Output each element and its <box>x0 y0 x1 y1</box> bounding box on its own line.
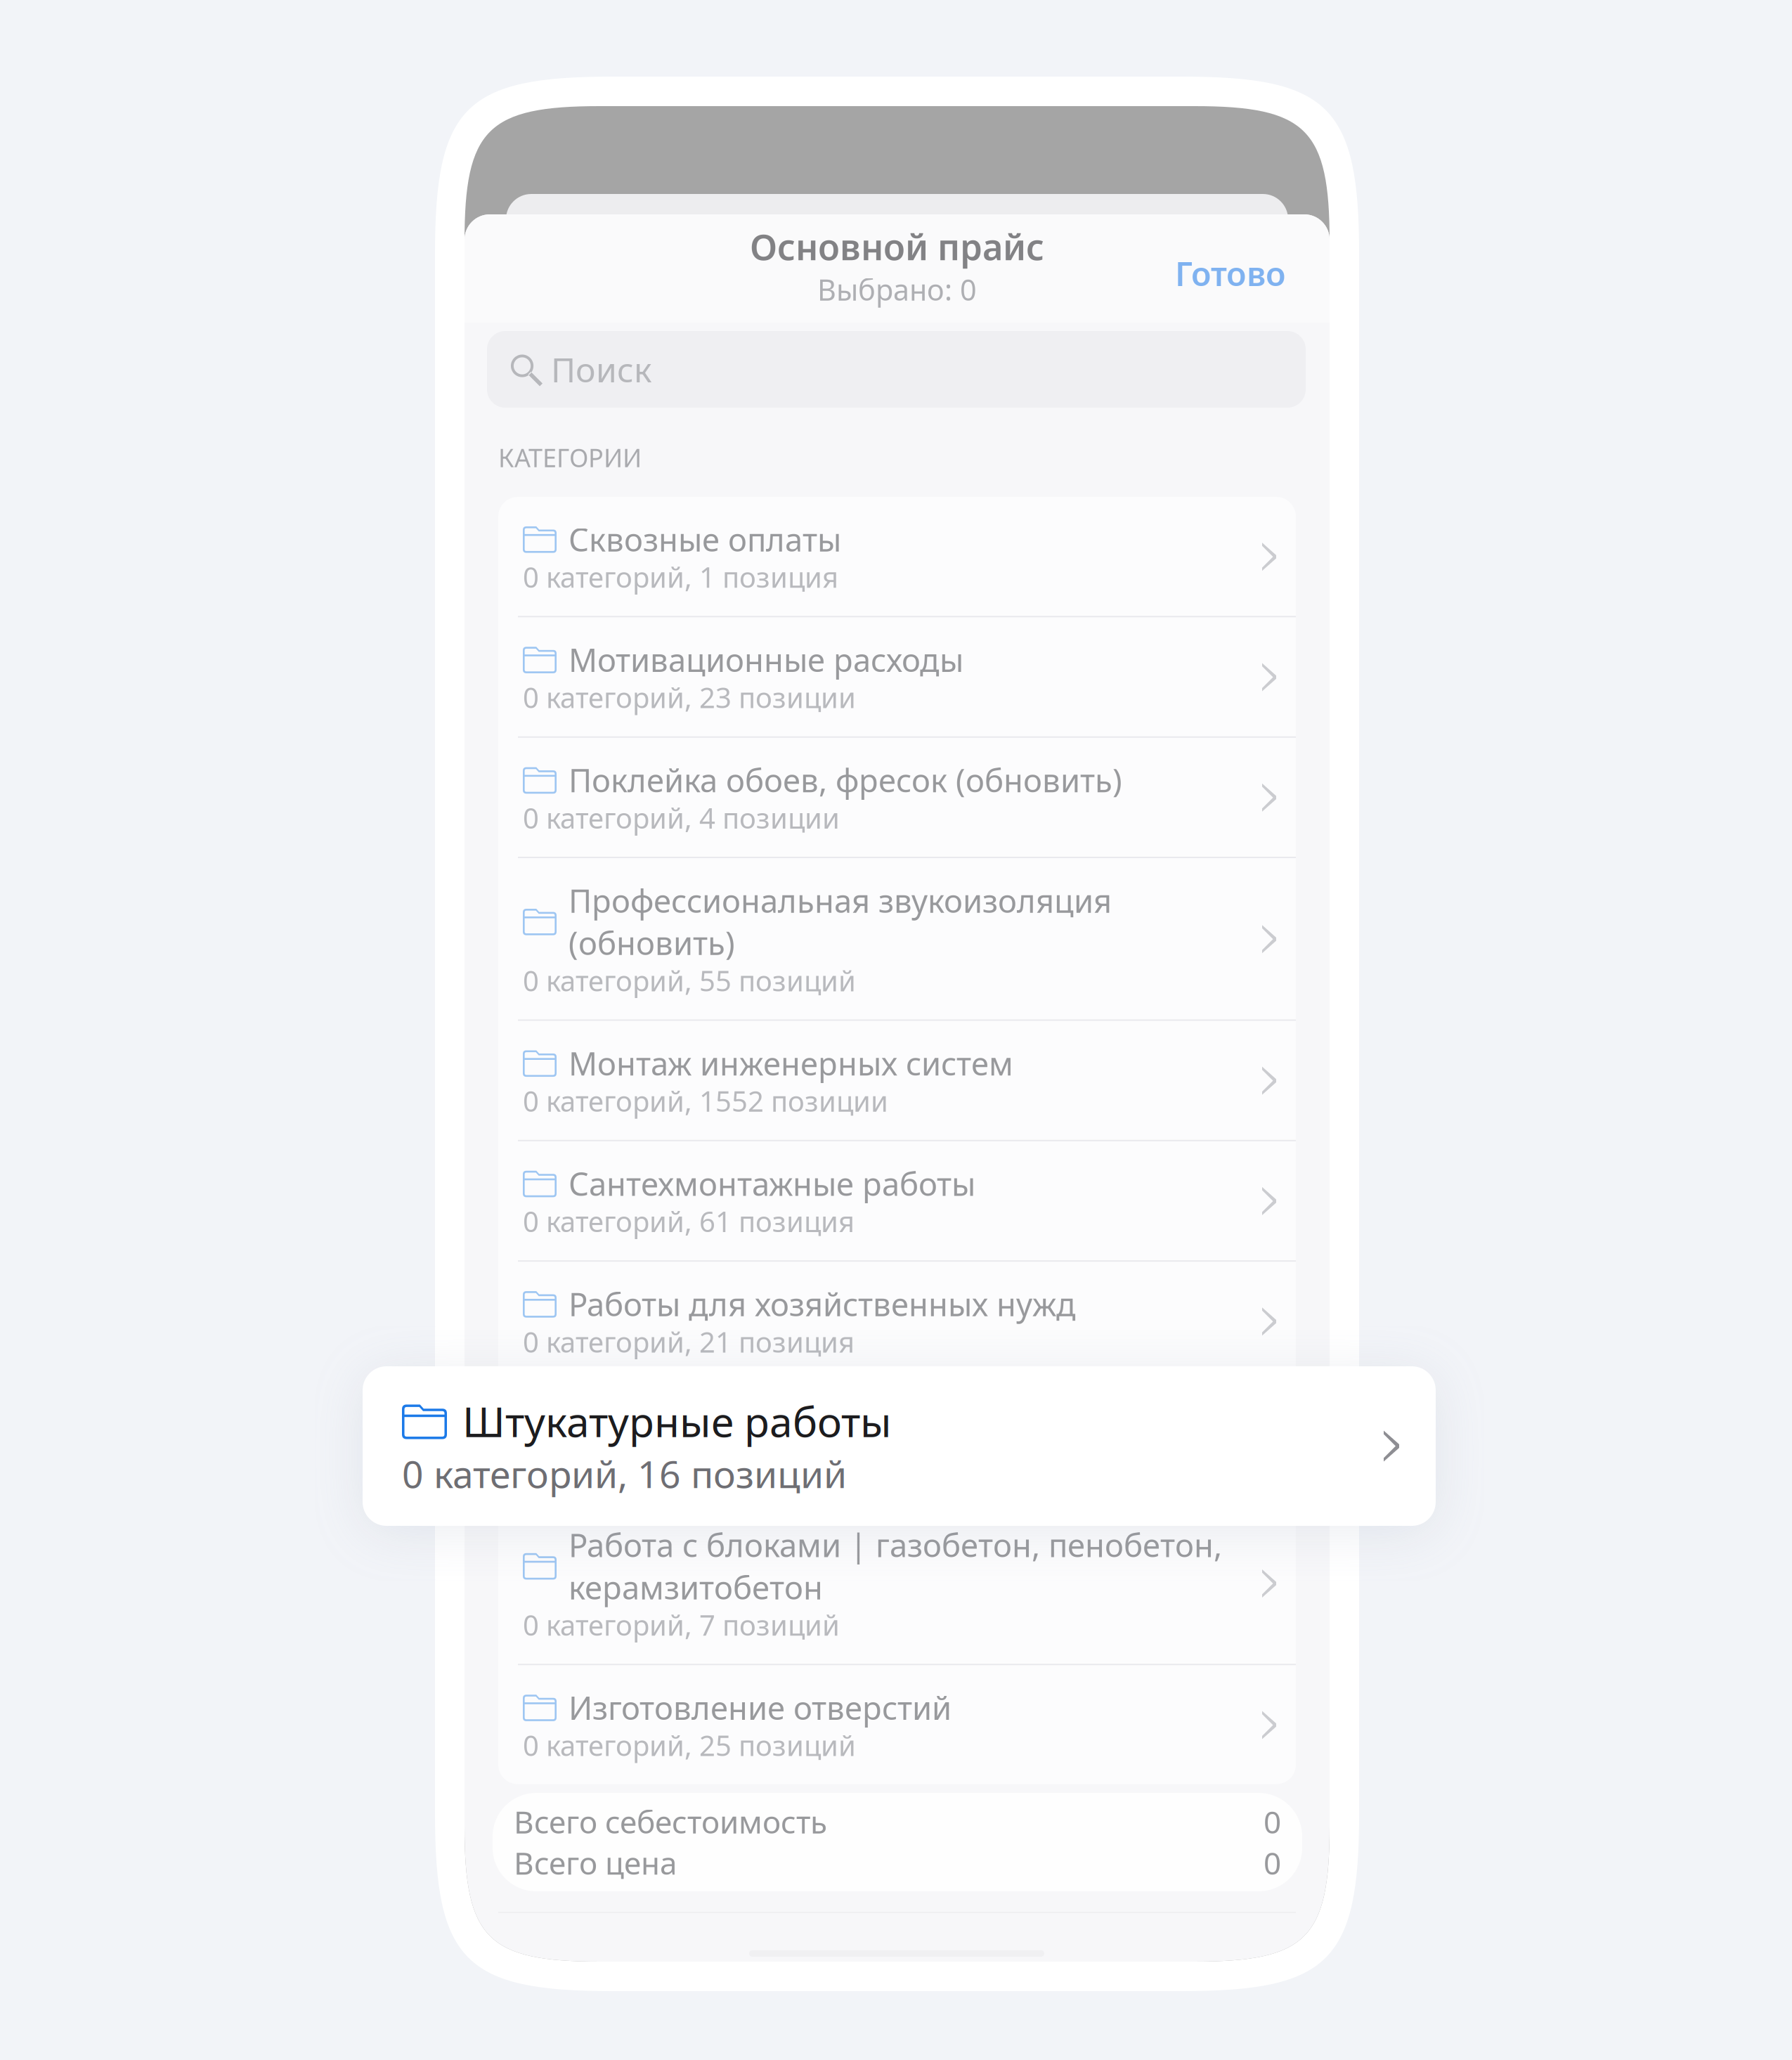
button[interactable]: Поиск <box>487 331 1306 408</box>
staticText: Основной прайс <box>750 223 1044 270</box>
button[interactable]: Работы для хозяйственных нужд <box>498 1262 1296 1381</box>
staticText: 0 категорий, 16 позиций <box>523 1443 856 1481</box>
staticText: Сантехмонтажные работы <box>569 1162 975 1205</box>
staticText: Всего цена <box>514 1842 677 1883</box>
button[interactable]: Штукатурные работы <box>363 1366 1436 1526</box>
button[interactable]: Сантехмонтажные работы <box>498 1141 1296 1260</box>
staticText: керамзитобетон <box>569 1566 823 1608</box>
button[interactable]: Работа с блоками | газобетон, пенобетон, <box>498 1502 1296 1664</box>
button[interactable]: Изготовление отверстий <box>498 1665 1296 1784</box>
staticText: (обновить) <box>569 922 735 964</box>
staticText: КАТЕГОРИИ <box>498 441 642 474</box>
staticText: 0 категорий, 21 позиция <box>523 1323 855 1360</box>
staticText: 0 категорий, 1552 позиции <box>523 1082 888 1119</box>
staticText: Монтаж инженерных систем <box>569 1042 1013 1084</box>
button[interactable]: Готово <box>1110 245 1286 302</box>
staticText: 0 категорий, 55 позиций <box>523 962 856 999</box>
staticText: Штукатурные работы <box>462 1394 892 1449</box>
staticText: Работа с блоками | газобетон, пенобетон, <box>569 1524 1222 1566</box>
staticText: 0 категорий, 61 позиция <box>523 1203 855 1240</box>
staticText: 0 категорий, 1 позиция <box>523 558 838 596</box>
staticText: Поиск <box>551 347 651 392</box>
staticText: 0 категорий, 16 позиций <box>402 1449 847 1498</box>
staticText: Изготовление отверстий <box>569 1686 952 1729</box>
staticText: Выбрано: 0 <box>817 270 977 309</box>
staticText: 0 категорий, 7 позиций <box>523 1606 840 1643</box>
button[interactable]: Штукатурные работы <box>498 1382 1296 1501</box>
staticText: Сквозные оплаты <box>569 518 841 560</box>
button[interactable]: Сквозные оплаты <box>498 497 1296 616</box>
staticText: Штукатурные работы <box>569 1403 900 1445</box>
button[interactable]: Поклейка обоев, фресок (обновить) <box>498 738 1296 857</box>
staticText: 0 категорий, 23 позиции <box>523 679 856 716</box>
staticText: Работы для хозяйственных нужд <box>569 1283 1076 1325</box>
staticText: Поклейка обоев, фресок (обновить) <box>569 759 1122 801</box>
staticText: Всего себестоимость <box>514 1801 827 1842</box>
button[interactable]: Профессиональная звукоизоляция <box>498 858 1296 1019</box>
staticText: 0 категорий, 4 позиции <box>523 799 840 836</box>
button[interactable]: Монтаж инженерных систем <box>498 1021 1296 1140</box>
staticText: 0 категорий, 25 позиций <box>523 1727 856 1764</box>
staticText: Профессиональная звукоизоляция <box>569 879 1112 922</box>
staticText: 0 <box>1264 1801 1281 1842</box>
staticText: 0 <box>1264 1842 1281 1883</box>
staticText: Готово <box>1175 252 1286 295</box>
button[interactable]: Мотивационные расходы <box>498 617 1296 736</box>
staticText: Мотивационные расходы <box>569 638 963 681</box>
